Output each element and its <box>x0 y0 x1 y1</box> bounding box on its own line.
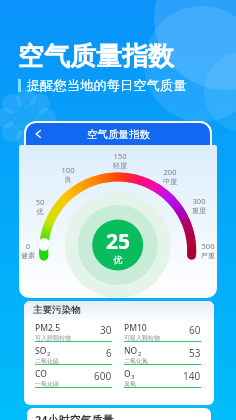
staticText: 一氧化碳 <box>35 380 59 388</box>
staticText: 2 <box>138 350 142 358</box>
staticText: 臭氧 <box>124 380 136 388</box>
button[interactable]: PM10 <box>124 319 201 342</box>
staticText: PM10 <box>124 322 147 334</box>
staticText: 提醒您当地的每日空气质量 <box>27 77 187 94</box>
staticText: 30 <box>100 323 112 337</box>
staticText: 25 <box>88 227 148 256</box>
staticText: 轻度 <box>102 161 138 170</box>
staticText: 200 <box>152 167 188 177</box>
staticText: 主要污染物 <box>33 304 81 316</box>
staticText: 空气质量指数 <box>18 40 174 73</box>
staticText: 3 <box>131 373 135 381</box>
button[interactable]: NO <box>124 342 201 365</box>
staticText: 可吸入颗粒物 <box>124 334 160 342</box>
staticText: 健康 <box>19 251 46 260</box>
staticText: 600 <box>94 369 112 383</box>
staticText: 6 <box>106 346 112 360</box>
staticText: 60 <box>189 323 201 337</box>
staticText: 重度 <box>181 206 217 215</box>
staticText: 53 <box>189 346 201 360</box>
staticText: 中度 <box>152 177 188 186</box>
staticText: 0 <box>19 241 46 251</box>
button[interactable]: PM2.5 <box>35 319 112 342</box>
staticText: CO <box>35 368 47 380</box>
staticText: 空气质量指数 <box>87 128 150 141</box>
staticText: O <box>124 368 131 380</box>
staticText: 24小时空气质量 <box>35 412 114 420</box>
staticText: 可入肺颗粒物 <box>35 334 71 342</box>
staticText: SO <box>35 345 47 357</box>
staticText: 二氧化氮 <box>124 357 148 365</box>
staticText: 50 <box>22 197 58 207</box>
button[interactable]: CO <box>35 365 112 388</box>
button[interactable]: SO <box>35 342 112 365</box>
staticText: PM2.5 <box>35 322 61 334</box>
staticText: 300 <box>181 196 217 206</box>
staticText: 严重 <box>190 251 217 260</box>
staticText: 2 <box>47 350 51 358</box>
staticText: 二氧化硫 <box>35 357 59 365</box>
staticText: 良 <box>50 175 86 184</box>
button[interactable]: O <box>124 365 201 388</box>
staticText: 500 <box>190 241 217 251</box>
staticText: 140 <box>183 369 201 383</box>
staticText: 100 <box>50 165 86 175</box>
staticText: 优 <box>22 207 58 216</box>
staticText: 优 <box>88 254 148 265</box>
staticText: 150 <box>102 151 138 161</box>
staticText: NO <box>124 345 138 357</box>
button[interactable]: 返回 <box>26 123 52 145</box>
